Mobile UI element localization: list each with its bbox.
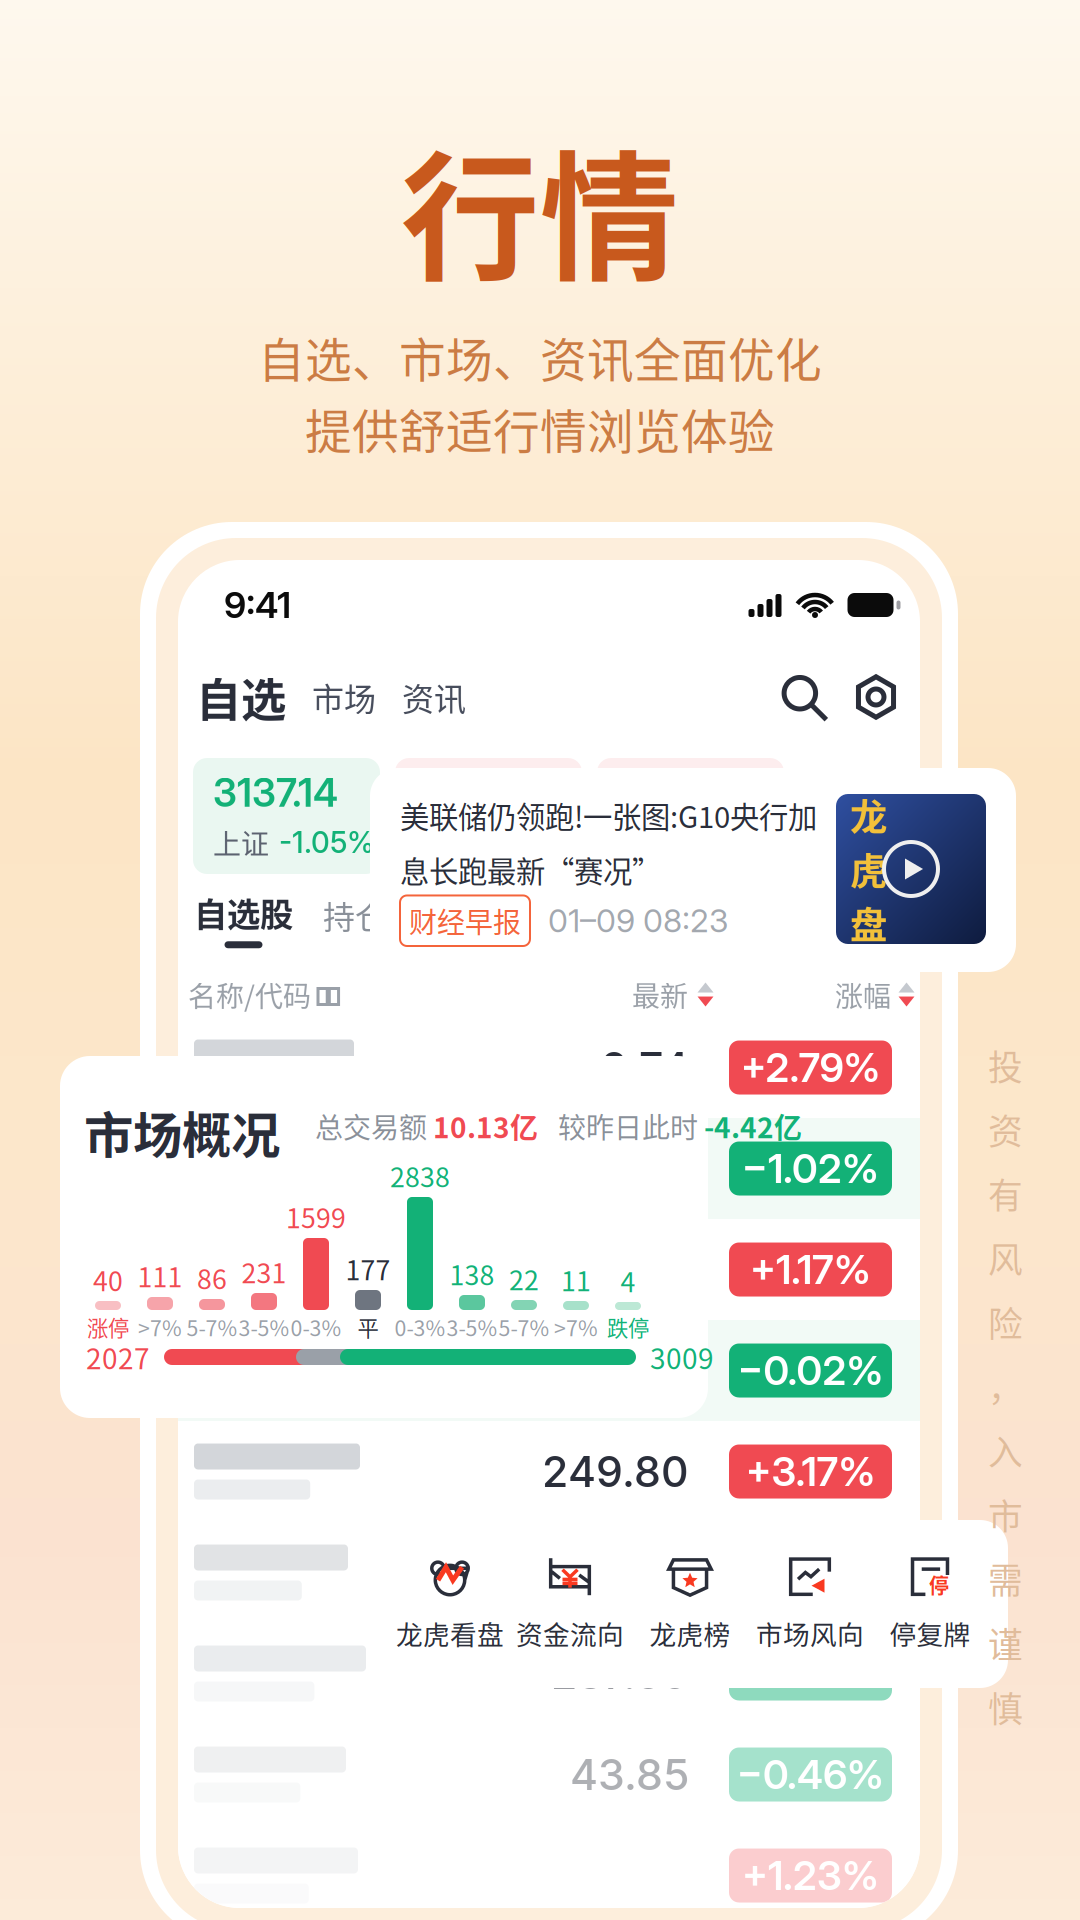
button[interactable]: 设置 [828, 675, 872, 719]
button[interactable]: 市场 [312, 674, 376, 720]
staticText: 11281.03 [415, 769, 565, 816]
button[interactable] [178, 1320, 920, 1421]
staticText: 龙 [850, 788, 887, 842]
button[interactable]: 43.85 [178, 1724, 920, 1825]
staticText: 行情 [401, 108, 679, 308]
staticText: 86 [197, 1258, 227, 1297]
staticText: 提供舒适行情浏览体验 [305, 395, 775, 462]
button[interactable]: 资讯 [402, 674, 466, 720]
staticText: 22 [509, 1259, 539, 1298]
staticText: +3.17% [745, 1447, 875, 1496]
button[interactable]: 2.74 [178, 1017, 920, 1118]
staticText: 停 [929, 1570, 949, 1599]
staticText: 231 [241, 1252, 286, 1291]
button[interactable]: 搜索 [778, 672, 828, 722]
staticText: +0.42% [481, 825, 591, 860]
staticText: 风 [988, 1233, 1023, 1283]
staticText: +0.55% [738, 1548, 882, 1597]
staticText: >7% [554, 1312, 598, 1342]
staticText: 市场风向 [756, 1614, 864, 1652]
staticText: 龙虎榜 [649, 1614, 730, 1652]
button[interactable]: 237.50 [178, 1623, 920, 1724]
staticText: 11 [561, 1260, 591, 1299]
staticText: 涨停 [87, 1312, 129, 1342]
staticText: 平 [357, 1312, 378, 1342]
staticText: 深证 [415, 822, 471, 863]
button[interactable] [178, 1825, 920, 1920]
staticText: 需 [988, 1554, 1023, 1604]
staticText: 3009 [650, 1337, 714, 1377]
button[interactable]: 249.80 [178, 1421, 920, 1522]
button[interactable]: 3137.14 [193, 758, 380, 874]
button[interactable]: 龙虎看盘 [390, 1542, 510, 1666]
staticText: ， [988, 1361, 1023, 1411]
staticText: +1.23% [742, 1851, 879, 1900]
button[interactable] [178, 1219, 920, 1320]
staticText: 资讯 [402, 674, 466, 720]
staticText: 总交易额 [315, 1106, 427, 1146]
staticText: 自选股 [194, 888, 293, 936]
staticText: 249.80 [542, 1446, 689, 1497]
staticText: 2838 [390, 1156, 450, 1195]
staticText: 138 [449, 1254, 494, 1293]
button[interactable]: 2249.67 [597, 758, 784, 874]
button[interactable]: 11281.03 [395, 758, 582, 874]
button[interactable]: 龙虎榜 [630, 1542, 750, 1666]
staticText: 持仓 [323, 892, 387, 938]
button[interactable]: 资金流向 [510, 1542, 630, 1666]
staticText: 3137.14 [213, 769, 338, 816]
staticText: -4.42亿 [698, 1106, 802, 1146]
staticText: 2249.67 [617, 769, 764, 816]
staticText: 最新 [632, 974, 688, 1015]
button[interactable] [178, 1522, 920, 1623]
staticText: 2027 [86, 1337, 150, 1377]
button[interactable]: 自选股 [194, 888, 293, 948]
staticText: 43.85 [570, 1749, 689, 1800]
staticText: 177 [345, 1249, 390, 1288]
staticText: 10.13亿 [427, 1106, 538, 1146]
staticText: 资 [988, 1104, 1023, 1154]
staticText: 谨 [988, 1618, 1023, 1668]
staticText: −0.02% [737, 1346, 883, 1395]
staticText: 美联储仍领跑!一张图:G10央行加 [400, 794, 817, 836]
staticText: 虎 [850, 842, 887, 896]
staticText: -1.05% [279, 825, 375, 860]
staticText: 3-5% [238, 1312, 289, 1342]
button[interactable]: 市场风向 [750, 1542, 870, 1666]
staticText: 2.74 [601, 1042, 689, 1093]
staticText: 自选、市场、资讯全面优化 [258, 323, 822, 391]
button[interactable]: 停 [870, 1542, 990, 1666]
staticText: −1.02% [742, 1144, 879, 1193]
staticText: 慎 [988, 1682, 1023, 1732]
staticText: 停复牌 [889, 1614, 970, 1652]
staticText: 有 [988, 1168, 1023, 1219]
staticText: 息长跑最新“赛况” [400, 848, 661, 891]
staticText: 5-7% [186, 1312, 237, 1342]
staticText: 01–09 08:23 [548, 901, 728, 940]
button[interactable]: 美联储仍领跑!一张图:G10央行加 [370, 768, 1016, 972]
staticText: 险 [988, 1297, 1023, 1347]
staticText: 涨幅 [835, 974, 891, 1015]
button[interactable]: 自选 [196, 664, 286, 730]
staticText: 投 [988, 1040, 1023, 1090]
staticText: 1599 [286, 1197, 346, 1236]
button[interactable]: 持仓 [323, 888, 387, 934]
staticText: 盘 [850, 896, 887, 950]
staticText: 5-7% [498, 1312, 549, 1342]
staticText: −0.46% [737, 1750, 884, 1799]
staticText: 市 [988, 1489, 1023, 1540]
staticText: 名称/代码 [188, 974, 311, 1015]
staticText: 市场概况 [84, 1096, 280, 1167]
staticText: −0.46% [737, 1649, 884, 1698]
button[interactable]: 分组 [417, 888, 481, 934]
staticText: +0.17% [711, 825, 809, 860]
staticText: 3-5% [446, 1312, 497, 1342]
staticText: 自选 [196, 664, 286, 730]
staticText: 入 [988, 1425, 1023, 1475]
staticText: 资金流向 [516, 1614, 624, 1652]
staticText: 40 [93, 1260, 123, 1299]
staticText: 创业板 [617, 822, 701, 863]
staticText: 111 [137, 1256, 182, 1295]
button[interactable] [178, 1118, 920, 1219]
staticText: 财经早报 [409, 900, 521, 941]
